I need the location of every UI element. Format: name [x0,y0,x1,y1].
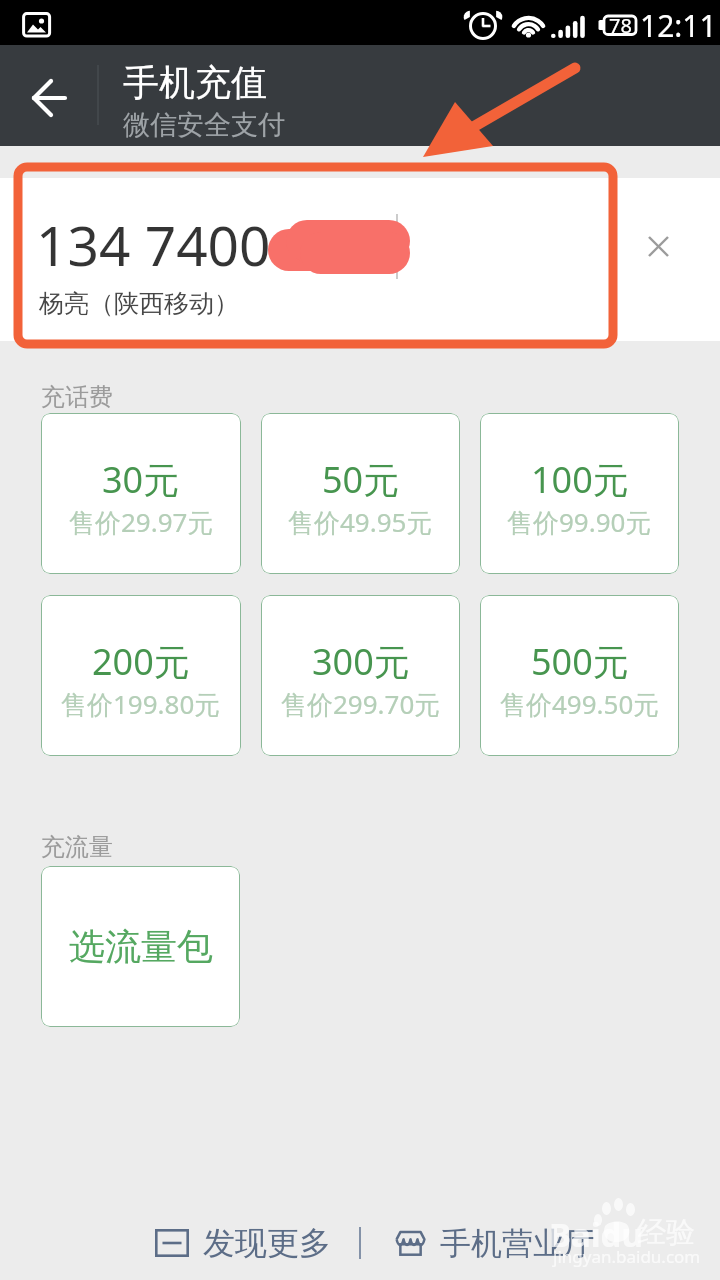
staticText: jingyan.baidu.com [553,1245,701,1268]
button[interactable]: Clear [634,222,682,270]
staticText: 50元 [322,455,400,504]
button[interactable]: 选流量包 [41,866,240,1027]
button[interactable]: 30元 [41,413,241,574]
button[interactable]: 50元 [261,413,460,574]
button[interactable]: 200元 [41,595,241,756]
staticText: 发现更多 [203,1223,331,1263]
staticText: 300元 [312,637,410,686]
button[interactable]: 发现更多 [155,1214,331,1272]
staticText: 微信安全支付 [123,108,285,142]
staticText: 30元 [102,455,180,504]
button[interactable]: 500元 [480,595,679,756]
staticText: 选流量包 [69,924,213,969]
staticText: 134 7400 8 [36,207,317,282]
button[interactable]: Back [0,45,96,146]
button[interactable]: 300元 [261,595,460,756]
staticText: 12:11 [640,5,717,46]
staticText: 78 [609,12,632,39]
staticText: 充话费 [41,382,113,412]
staticText: 手机充值 [123,60,267,105]
staticText: 售价49.95元 [288,504,433,540]
staticText: 售价29.97元 [69,504,214,540]
staticText: 200元 [92,637,190,686]
button[interactable]: 134 7400 8 [0,178,720,341]
button[interactable]: 手机营业厅 [396,1214,595,1272]
staticText: 杨亮（陕西移动） [39,288,239,319]
staticText: 充流量 [41,832,113,862]
staticText: 售价499.50元 [500,686,660,722]
staticText: 经验 [637,1214,695,1251]
staticText: 售价199.80元 [61,686,221,722]
staticText: Baidu [549,1212,643,1257]
button[interactable]: 100元 [480,413,679,574]
staticText: 100元 [531,455,629,504]
staticText: 售价299.70元 [281,686,441,722]
staticText: 售价99.90元 [507,504,652,540]
staticText: 500元 [531,637,629,686]
staticText: 手机营业厅 [440,1224,595,1263]
